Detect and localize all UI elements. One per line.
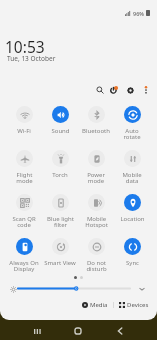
button[interactable]: Scan QR code [6,194,42,229]
staticText: Do not disturb [86,259,107,273]
staticText: Wi-Fi [17,127,31,135]
button[interactable]: Smart View [42,238,78,267]
button[interactable]: Back [110,321,130,340]
staticText: Location [120,215,145,223]
staticText: Always On Display [9,259,39,273]
staticText: Scan QR code [12,215,36,229]
button[interactable]: Devices [117,299,151,311]
button[interactable]: Sync [114,238,150,267]
button[interactable]: Auto rotate [114,106,150,141]
button[interactable]: Settings [123,83,137,97]
button[interactable]: Search [93,83,107,97]
button[interactable]: Mobile data [114,150,150,185]
staticText: Smart View [44,259,76,267]
button[interactable]: Wi-Fi [6,106,42,135]
staticText: Auto rotate [123,127,141,141]
button[interactable]: Power mode [78,150,114,185]
staticText: Mobile data [122,171,142,185]
staticText: Sync [126,259,139,267]
button[interactable]: Mobile Hotspot [78,194,114,229]
button[interactable]: Flight mode [6,150,42,185]
button[interactable]: Do not disturb [78,238,114,273]
button[interactable]: Power off [107,83,121,97]
staticText: Torch [52,171,68,179]
staticText: Devices [127,301,149,309]
button[interactable]: Sound [42,106,78,135]
staticText: Flight mode [16,171,33,185]
button[interactable]: Recents [27,321,47,340]
staticText: 10:53 [5,36,45,57]
button[interactable]: Home [68,321,88,340]
button[interactable]: Location [114,194,150,223]
staticText: 96% [133,10,144,16]
staticText: Media [90,301,108,309]
button[interactable]: Torch [42,150,78,179]
staticText: Blue light filter [47,215,74,229]
staticText: Mobile Hotspot [85,215,108,229]
button[interactable]: Bluetooth [78,106,114,135]
button[interactable]: Blue light filter [42,194,78,229]
staticText: Power mode [87,171,105,185]
staticText: Sound [51,127,70,135]
button[interactable]: Expand [136,283,147,294]
button[interactable]: More options [139,83,153,97]
button[interactable]: Always On Display [6,238,42,273]
staticText: Tue, 13 October [7,54,56,63]
button[interactable]: Media [80,299,110,311]
staticText: Bluetooth [82,127,110,135]
